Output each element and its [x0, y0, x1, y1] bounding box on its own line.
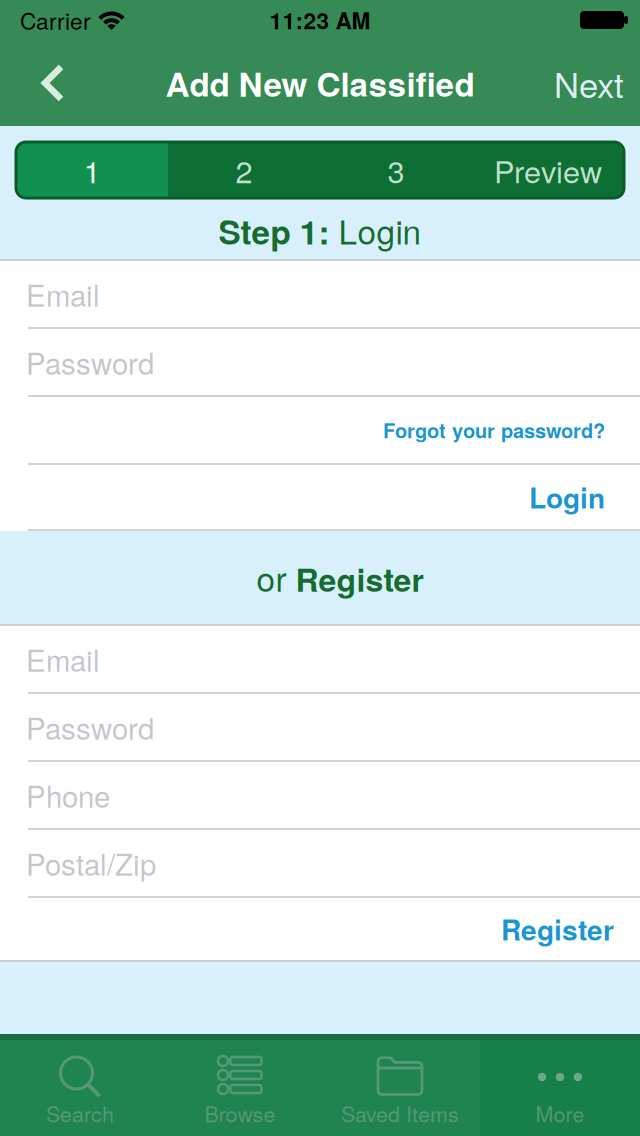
staticText: Add New Classified [165, 60, 474, 106]
staticText: 1 [83, 149, 100, 191]
staticText: Password [26, 341, 154, 382]
staticText: More [535, 1098, 584, 1128]
button[interactable]: Saved Items [320, 1040, 480, 1136]
button[interactable]: Email [0, 261, 640, 327]
staticText: Email [26, 273, 100, 314]
staticText: Step 1: Login [218, 207, 421, 254]
button[interactable]: Password [0, 329, 640, 395]
button[interactable]: More [480, 1040, 640, 1136]
button[interactable]: Register [0, 898, 640, 960]
staticText: Next [554, 59, 624, 107]
button[interactable]: Preview [472, 142, 624, 198]
button[interactable]: 3 [320, 142, 472, 198]
staticText: Register [501, 909, 614, 949]
staticText: Preview [494, 149, 602, 191]
button[interactable]: Phone [0, 762, 640, 828]
button[interactable]: Forgot your password? [0, 397, 640, 463]
staticText: Forgot your password? [383, 416, 605, 444]
staticText: 2 [235, 149, 252, 191]
staticText: or Register [256, 554, 423, 601]
staticText: Password [26, 706, 154, 747]
staticText: Email [26, 638, 100, 679]
button[interactable]: Search [0, 1040, 160, 1136]
button[interactable]: Next [554, 40, 640, 126]
staticText: Phone [26, 774, 110, 815]
staticText: Saved Items [341, 1098, 459, 1128]
staticText: Browse [204, 1098, 275, 1128]
button[interactable]: 2 [168, 142, 320, 198]
button[interactable]: Password [0, 694, 640, 760]
staticText: Login [529, 477, 605, 517]
staticText: 11:23 AM [269, 4, 370, 36]
button[interactable]: Browse [160, 1040, 320, 1136]
button[interactable]: Back [0, 40, 84, 126]
staticText: Carrier [20, 4, 91, 36]
button[interactable]: 1 [16, 142, 168, 198]
button[interactable]: Email [0, 626, 640, 692]
button[interactable]: Login [0, 465, 640, 529]
staticText: 3 [387, 149, 404, 191]
staticText: Postal/Zip [26, 842, 156, 883]
staticText: Search [46, 1098, 114, 1128]
button[interactable]: Postal/Zip [0, 830, 640, 896]
